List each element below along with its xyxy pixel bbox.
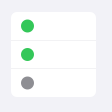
button[interactable]: Second item, active (11, 41, 96, 69)
button[interactable]: Third item, inactive (11, 69, 96, 97)
button[interactable]: First item, active (11, 12, 96, 41)
